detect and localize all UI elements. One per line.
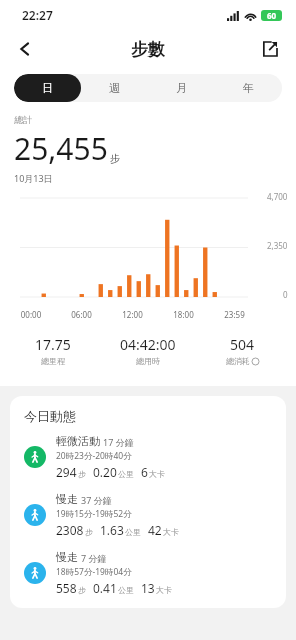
staticText: 大卡: [156, 585, 172, 595]
staticText: 25,455: [14, 128, 108, 169]
staticText: 大卡: [149, 469, 165, 479]
button[interactable]: Back: [8, 32, 42, 66]
staticText: 總用時: [136, 356, 160, 366]
staticText: 月: [176, 81, 187, 95]
staticText: 大卡: [163, 527, 179, 537]
button[interactable]: 年: [215, 74, 282, 102]
staticText: 18時57分-19時04分: [56, 566, 132, 578]
staticText: 12:00: [107, 309, 158, 320]
staticText: 4,700: [267, 191, 288, 202]
staticText: 37 分鐘: [81, 494, 112, 506]
staticText: 日: [42, 81, 53, 95]
staticText: 總消耗: [226, 356, 250, 366]
staticText: 2,350: [267, 240, 288, 251]
staticText: 步: [78, 585, 86, 595]
button[interactable]: 504: [195, 335, 290, 366]
staticText: 19時15分-19時52分: [56, 508, 132, 520]
staticText: 504: [230, 335, 255, 354]
staticText: 17.75: [35, 335, 71, 354]
staticText: 06:00: [56, 309, 107, 320]
button[interactable]: 輕微活動: [24, 434, 272, 480]
staticText: 公里: [118, 469, 134, 479]
staticText: 今日動態: [24, 408, 76, 424]
staticText: 22:27: [22, 7, 53, 23]
staticText: 步數: [131, 39, 165, 60]
staticText: 42: [148, 522, 162, 538]
button[interactable]: 17.75: [6, 335, 100, 366]
staticText: 00:00: [6, 309, 56, 320]
staticText: 慢走: [56, 550, 78, 564]
staticText: 總計: [14, 114, 32, 125]
staticText: 558: [56, 580, 77, 596]
staticText: 04:42:00: [120, 335, 176, 354]
staticText: 0.20: [93, 464, 117, 480]
staticText: 公里: [118, 585, 134, 595]
staticText: 20時23分-20時40分: [56, 450, 132, 462]
button[interactable]: 慢走: [24, 492, 272, 538]
button[interactable]: 04:42:00: [100, 335, 195, 366]
button[interactable]: 慢走: [24, 550, 272, 596]
staticText: 0.41: [93, 580, 117, 596]
staticText: 6: [141, 464, 148, 480]
staticText: 總里程: [41, 356, 65, 366]
staticText: 步: [85, 527, 93, 537]
button[interactable]: Share: [254, 33, 286, 65]
staticText: 0: [283, 289, 288, 300]
staticText: 7 分鐘: [81, 552, 107, 564]
staticText: 步: [110, 152, 120, 165]
staticText: 週: [109, 81, 120, 95]
staticText: 1.63: [100, 522, 124, 538]
button[interactable]: 週: [81, 74, 148, 102]
button[interactable]: 月: [148, 74, 215, 102]
staticText: 年: [243, 81, 254, 95]
staticText: 輕微活動: [56, 434, 100, 448]
staticText: 10月13日: [14, 172, 53, 184]
staticText: 慢走: [56, 492, 78, 506]
staticText: 60: [267, 10, 277, 21]
staticText: 公里: [125, 527, 141, 537]
staticText: 23:59: [209, 309, 260, 320]
staticText: 294: [56, 464, 77, 480]
staticText: 17 分鐘: [103, 436, 134, 448]
button[interactable]: 日: [14, 74, 81, 102]
staticText: 步: [78, 469, 86, 479]
staticText: 13: [141, 580, 155, 596]
staticText: 2308: [56, 522, 84, 538]
staticText: 18:00: [158, 309, 209, 320]
